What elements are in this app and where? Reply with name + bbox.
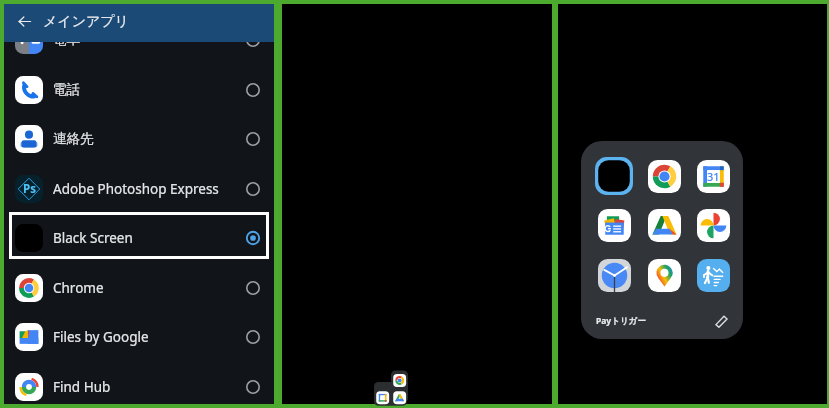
button[interactable]: Back xyxy=(7,4,41,38)
button[interactable]: Fit xyxy=(691,253,735,297)
button[interactable]: Google News xyxy=(592,203,636,247)
button[interactable]: Find Hub xyxy=(9,364,269,408)
staticText: Chrome xyxy=(53,279,104,297)
staticText: Files by Google xyxy=(53,328,149,346)
button[interactable]: Clock xyxy=(592,253,636,297)
button[interactable]: 電卓 xyxy=(9,17,269,62)
button[interactable]: Maps xyxy=(642,253,686,297)
button[interactable]: Edit xyxy=(712,311,732,331)
staticText: Payトリガー xyxy=(596,315,646,327)
button[interactable]: Chrome xyxy=(9,265,269,310)
button[interactable]: Ps xyxy=(9,166,269,211)
button[interactable]: Black Screen xyxy=(9,215,269,260)
staticText: 電話 xyxy=(53,81,80,98)
staticText: Find Hub xyxy=(53,378,111,396)
button[interactable]: Photos xyxy=(691,203,735,247)
button[interactable]: 連絡先 xyxy=(9,116,269,161)
button[interactable]: Black Screen xyxy=(592,154,636,198)
staticText: メインアプリ xyxy=(43,13,129,31)
button[interactable]: Calendar xyxy=(691,154,735,198)
button[interactable]: Files by Google xyxy=(9,314,269,359)
staticText: 電卓 xyxy=(53,31,80,48)
button[interactable]: App shortcuts widget xyxy=(374,367,408,401)
button[interactable]: 電話 xyxy=(9,67,269,112)
button[interactable]: Drive xyxy=(642,203,686,247)
staticText: Adobe Photoshop Express xyxy=(53,180,219,198)
button[interactable]: Chrome xyxy=(642,154,686,198)
staticText: Ps xyxy=(23,181,36,197)
staticText: 31 xyxy=(707,169,720,184)
staticText: Black Screen xyxy=(53,229,133,247)
staticText: 連絡先 xyxy=(53,130,94,147)
